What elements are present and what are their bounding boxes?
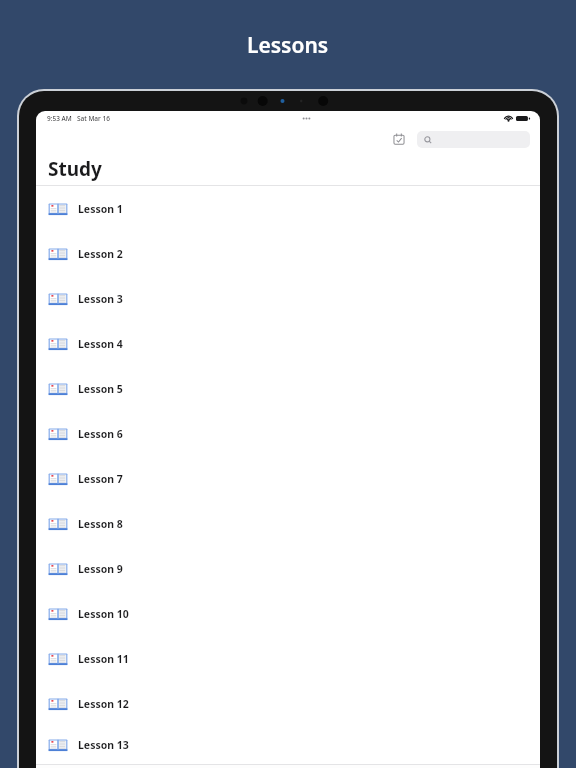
- button[interactable]: Lesson 4: [36, 321, 540, 366]
- staticText: 9:53 AM Sat Mar 16: [47, 114, 110, 123]
- button[interactable]: Lesson 5: [36, 366, 540, 411]
- staticText: Lesson 9: [78, 562, 123, 576]
- button[interactable]: Lesson 12: [36, 681, 540, 726]
- button[interactable]: Lesson 1: [36, 186, 540, 231]
- button[interactable]: Lesson 8: [36, 501, 540, 546]
- staticText: Lesson 7: [78, 472, 123, 486]
- button[interactable]: Lesson 9: [36, 546, 540, 591]
- staticText: Lesson 1: [78, 202, 123, 216]
- button[interactable]: Lesson 2: [36, 231, 540, 276]
- button[interactable]: Lesson 6: [36, 411, 540, 456]
- button[interactable]: Lesson 10: [36, 591, 540, 636]
- staticText: Lesson 11: [78, 652, 129, 666]
- staticText: Lessons: [247, 31, 329, 60]
- button[interactable]: Lesson 7: [36, 456, 540, 501]
- staticText: Lesson 12: [78, 697, 129, 711]
- staticText: Lesson 3: [78, 292, 123, 306]
- staticText: Lesson 6: [78, 427, 123, 441]
- staticText: Lesson 8: [78, 517, 123, 531]
- staticText: Lesson 13: [78, 738, 129, 752]
- staticText: Lesson 10: [78, 607, 129, 621]
- staticText: Lesson 4: [78, 337, 123, 351]
- button[interactable]: Calendar: [389, 129, 409, 149]
- button[interactable]: Lesson 13: [36, 726, 540, 764]
- button[interactable]: Lesson 11: [36, 636, 540, 681]
- button[interactable]: Lesson 3: [36, 276, 540, 321]
- staticText: Study: [48, 156, 102, 182]
- button[interactable]: [417, 131, 530, 148]
- staticText: Lesson 2: [78, 247, 123, 261]
- staticText: Lesson 5: [78, 382, 123, 396]
